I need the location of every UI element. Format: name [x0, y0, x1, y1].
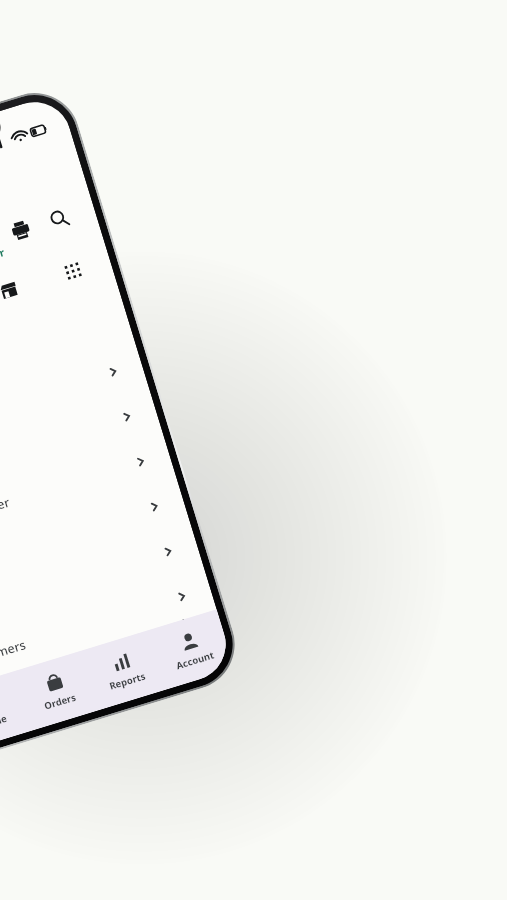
- button[interactable]: Products: [0, 341, 148, 468]
- staticText: Reports: [108, 669, 147, 693]
- button[interactable]: Purchase order: [0, 430, 176, 558]
- staticText: Customers: [0, 636, 28, 671]
- button[interactable]: Suppliers: [0, 475, 189, 603]
- button[interactable]: Home: [0, 671, 32, 751]
- staticText: Home: [0, 712, 9, 732]
- button[interactable]: More: [51, 249, 94, 292]
- button[interactable]: Customers: [0, 565, 217, 692]
- staticText: Account: [175, 648, 216, 672]
- button[interactable]: Store: [0, 269, 30, 312]
- button[interactable]: Reports: [0, 520, 203, 648]
- button[interactable]: Search: [40, 200, 77, 237]
- button[interactable]: Account: [149, 609, 235, 689]
- staticText: Purchase order: [0, 493, 13, 537]
- button[interactable]: Stock take: [0, 386, 162, 513]
- button[interactable]: Orders: [14, 651, 99, 731]
- staticText: Orders: [43, 690, 78, 713]
- button[interactable]: Print: [2, 211, 39, 249]
- staticText: New customer: [0, 245, 7, 281]
- button[interactable]: Reports: [81, 630, 167, 710]
